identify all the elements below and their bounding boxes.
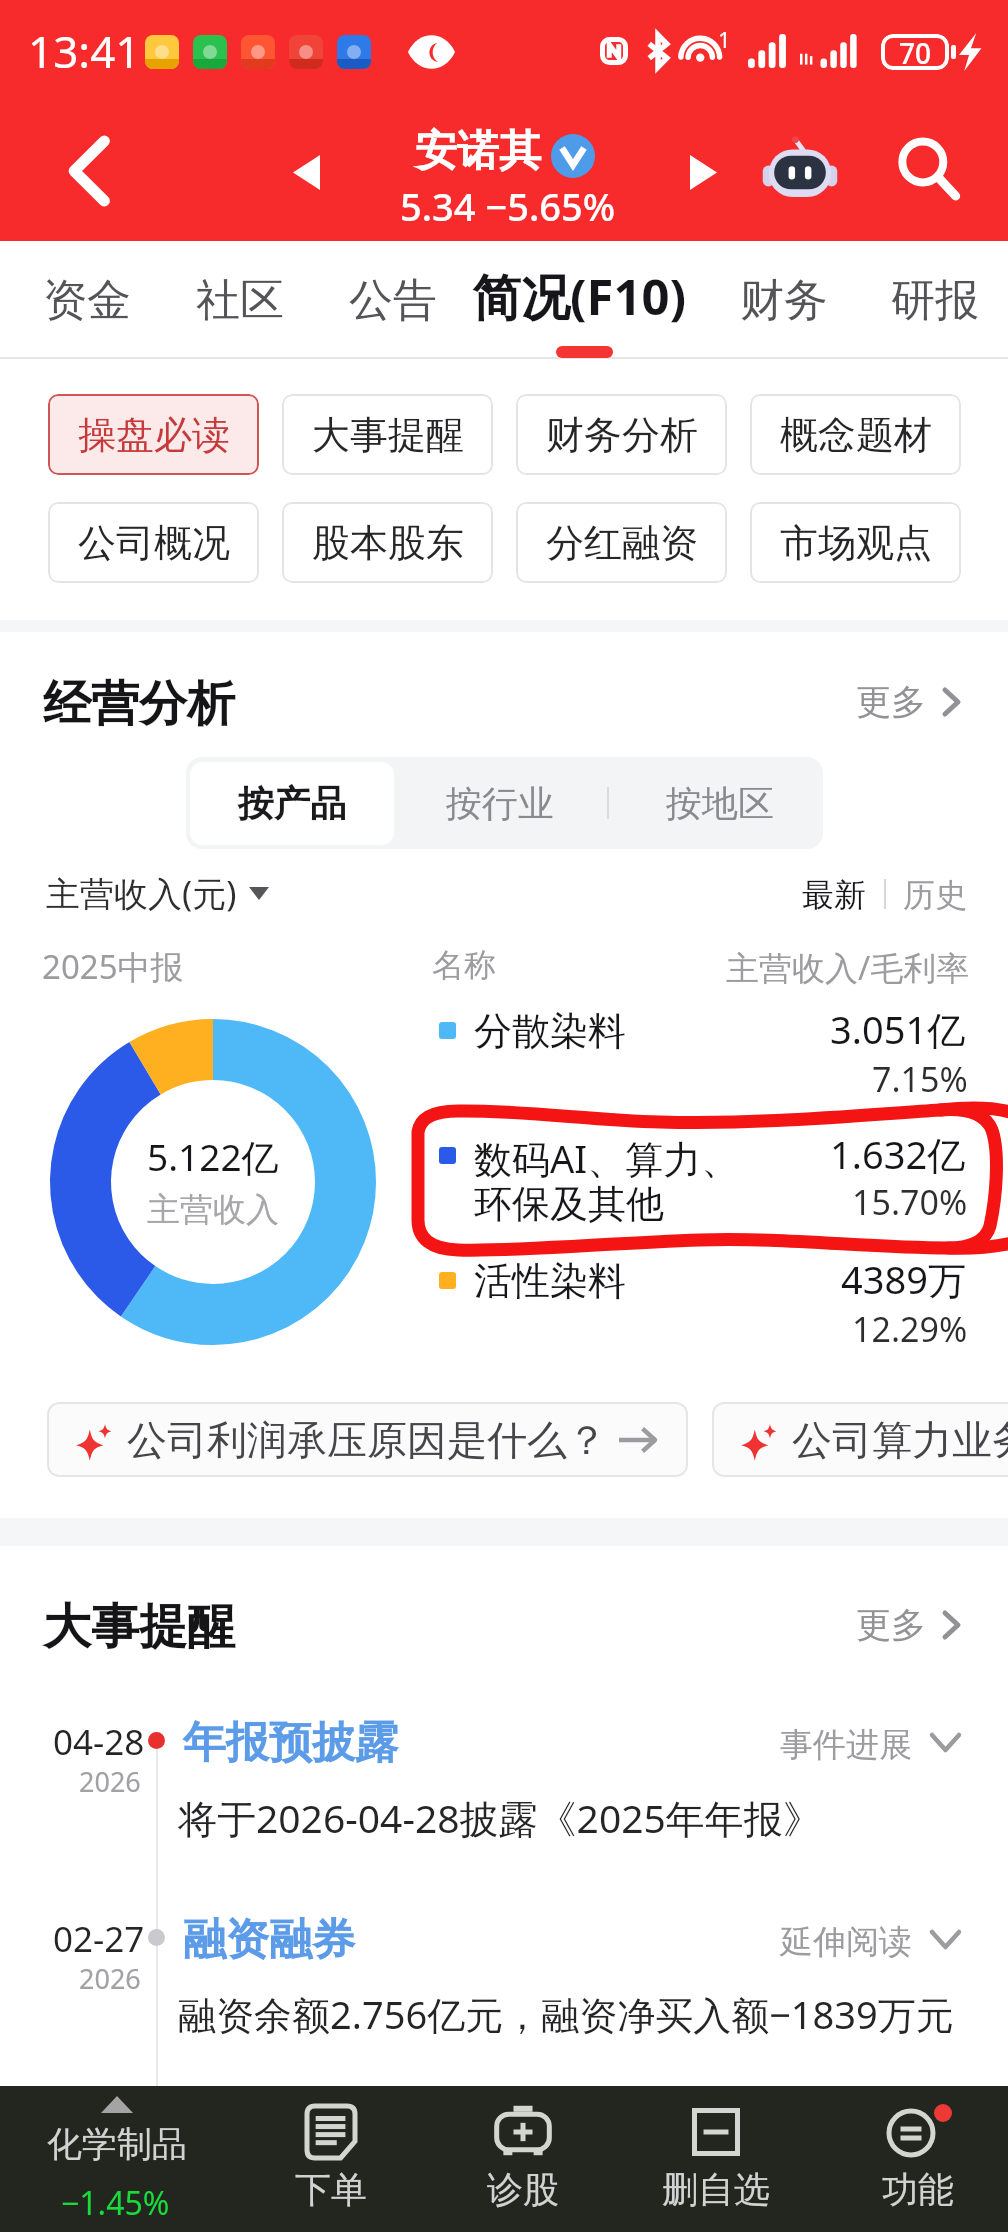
button[interactable]: 大事提醒 <box>282 394 493 475</box>
button[interactable]: 研报 <box>875 254 995 346</box>
button[interactable]: Search <box>884 126 974 214</box>
staticText: 操盘必读 <box>78 411 230 459</box>
button[interactable]: 公告 <box>333 254 453 346</box>
staticText: 70 <box>899 34 932 70</box>
staticText: 按产品 <box>238 781 346 826</box>
staticText: 5.34 −5.65% <box>400 180 616 232</box>
button[interactable]: 公司算力业务布局如何 <box>712 1402 1008 1477</box>
button[interactable]: 公司概况 <box>48 502 259 583</box>
staticText: 公司利润承压原因是什么？ <box>127 1415 607 1465</box>
button[interactable]: Back <box>42 122 138 220</box>
staticText: 延伸阅读 <box>780 1921 912 1963</box>
staticText: 按地区 <box>666 781 774 826</box>
staticText: 主营收入(元) <box>46 870 237 916</box>
button[interactable]: 资金 <box>27 254 147 346</box>
staticText: 安诺其 <box>415 125 541 178</box>
button[interactable]: 功能 <box>832 2086 1004 2232</box>
staticText: 删自选 <box>662 2167 770 2212</box>
staticText: 市场观点 <box>780 519 932 567</box>
button[interactable]: Previous stock <box>266 133 346 211</box>
staticText: 名称 <box>432 945 496 985</box>
staticText: 财务分析 <box>546 411 698 459</box>
button[interactable]: 公司利润承压原因是什么？ <box>47 1402 688 1477</box>
staticText: 5.122亿 <box>147 1131 279 1182</box>
staticText: −1.45% <box>61 2181 170 2225</box>
staticText: 02-27 <box>53 1915 145 1963</box>
button[interactable]: 更多 <box>840 667 975 737</box>
staticText: 活性染料 <box>474 1257 626 1305</box>
staticText: 将于2026-04-28披露《2025年年报》 <box>178 1791 822 1844</box>
staticText: 2025中报 <box>42 944 184 989</box>
button[interactable]: AI assistant <box>762 134 838 204</box>
staticText: 年报预披露 <box>183 1716 398 1770</box>
button[interactable]: 概念题材 <box>750 394 961 475</box>
staticText: 分散染料 <box>474 1007 626 1055</box>
button[interactable]: 股本股东 <box>282 502 493 583</box>
staticText: 2026 <box>79 1960 141 1997</box>
staticText: 融资融券 <box>183 1913 355 1967</box>
button[interactable] <box>20 1911 988 2081</box>
staticText: 12.29% <box>852 1306 968 1352</box>
staticText: 下单 <box>295 2167 367 2212</box>
staticText: 财务 <box>740 273 828 328</box>
staticText: 融资余额2.756亿元，融资净买入额−1839万元 <box>178 1988 954 2040</box>
button[interactable]: 财务 <box>724 254 844 346</box>
staticText: 环保及其他 <box>474 1180 664 1228</box>
button[interactable]: 简况(F10) <box>456 250 703 342</box>
button[interactable]: 最新 <box>790 864 878 926</box>
button[interactable]: 更多 <box>840 1590 975 1660</box>
staticText: 2026 <box>79 1763 141 1800</box>
staticText: 研报 <box>891 273 979 328</box>
staticText: 最新 <box>802 875 866 915</box>
staticText: 大事提醒 <box>312 411 464 459</box>
staticText: 资金 <box>43 273 131 328</box>
staticText: 大事提醒 <box>43 1597 235 1657</box>
staticText: 更多 <box>856 680 926 724</box>
staticText: 公司算力业务布局如何 <box>792 1415 1008 1465</box>
button[interactable]: 市场观点 <box>750 502 961 583</box>
button[interactable]: 操盘必读 <box>48 394 259 475</box>
button[interactable]: 按行业 <box>400 757 600 849</box>
button[interactable]: 诊股 <box>437 2086 609 2232</box>
button[interactable]: Next stock <box>663 133 743 211</box>
staticText: 1.632亿 <box>830 1128 966 1180</box>
staticText: 04-28 <box>53 1718 145 1766</box>
button[interactable]: 化学制品 <box>0 2086 258 2232</box>
button[interactable]: 历史 <box>891 864 979 926</box>
button[interactable]: 按产品 <box>190 762 394 845</box>
button[interactable] <box>420 1004 980 1080</box>
staticText: 13:41 <box>28 21 141 81</box>
button[interactable]: 分红融资 <box>516 502 727 583</box>
staticText: 功能 <box>882 2167 954 2212</box>
staticText: 化学制品 <box>47 2122 187 2166</box>
staticText: 股本股东 <box>312 519 464 567</box>
button[interactable]: 删自选 <box>630 2086 802 2232</box>
staticText: 按行业 <box>446 781 554 826</box>
staticText: 主营收入/毛利率 <box>726 945 970 990</box>
staticText: 经营分析 <box>43 674 235 734</box>
staticText: 主营收入 <box>147 1189 279 1231</box>
button[interactable] <box>20 1714 988 1884</box>
button[interactable] <box>420 1254 980 1330</box>
staticText: 事件进展 <box>780 1724 912 1766</box>
staticText: 社区 <box>196 273 284 328</box>
button[interactable]: 下单 <box>245 2086 417 2232</box>
staticText: 3.051亿 <box>830 1003 966 1055</box>
staticText: 历史 <box>903 875 967 915</box>
staticText: 4389万 <box>841 1253 966 1305</box>
button[interactable]: 财务分析 <box>516 394 727 475</box>
staticText: 概念题材 <box>780 411 932 459</box>
button[interactable]: 按地区 <box>616 757 823 849</box>
button[interactable]: 主营收入(元) <box>30 862 285 924</box>
staticText: 1 <box>718 24 731 54</box>
staticText: 公告 <box>349 273 437 328</box>
staticText: 更多 <box>856 1603 926 1647</box>
button[interactable]: 社区 <box>180 254 300 346</box>
staticText: 简况(F10) <box>472 263 687 330</box>
staticText: 数码AI、算力、 <box>474 1132 740 1184</box>
staticText: 7.15% <box>872 1056 968 1102</box>
staticText: 诊股 <box>487 2167 559 2212</box>
button[interactable] <box>420 1129 980 1249</box>
staticText: 公司概况 <box>78 519 230 567</box>
staticText: 分红融资 <box>546 519 698 567</box>
